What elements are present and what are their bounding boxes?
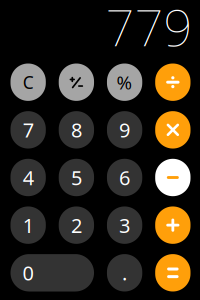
button[interactable]: 3: [107, 206, 142, 244]
button[interactable]: 2: [59, 206, 94, 244]
button[interactable]: 0: [10, 254, 94, 291]
staticText: .: [122, 259, 127, 286]
button[interactable]: Multiply: [155, 111, 190, 149]
button[interactable]: .: [107, 254, 142, 291]
staticText: 3: [119, 212, 130, 238]
staticText: 9: [119, 117, 130, 143]
button[interactable]: 1: [10, 206, 46, 244]
button[interactable]: Add: [155, 206, 190, 244]
button[interactable]: 9: [107, 111, 142, 149]
staticText: C: [23, 71, 34, 94]
staticText: 2: [71, 212, 82, 238]
button[interactable]: Equals: [155, 254, 190, 291]
button[interactable]: 7: [10, 111, 46, 149]
button[interactable]: Subtract: [155, 159, 190, 196]
staticText: 7: [23, 117, 34, 143]
staticText: 1: [23, 212, 34, 238]
button[interactable]: Plus minus: [59, 63, 94, 101]
button[interactable]: C: [10, 63, 46, 101]
staticText: 779: [105, 0, 192, 60]
button[interactable]: 4: [10, 159, 46, 196]
staticText: 6: [119, 164, 130, 191]
button[interactable]: 8: [59, 111, 94, 149]
staticText: 0: [22, 259, 33, 286]
button[interactable]: Divide: [155, 63, 190, 101]
staticText: 8: [71, 117, 82, 143]
staticText: %: [117, 70, 133, 95]
staticText: 4: [23, 164, 34, 191]
staticText: 5: [71, 164, 82, 191]
button[interactable]: 5: [59, 159, 94, 196]
button[interactable]: %: [107, 63, 142, 101]
button[interactable]: 6: [107, 159, 142, 196]
